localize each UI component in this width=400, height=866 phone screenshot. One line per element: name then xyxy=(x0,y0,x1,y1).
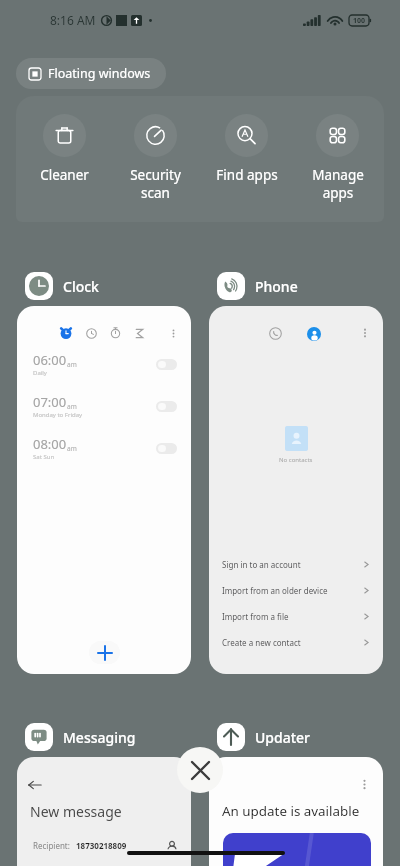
staticText: 08:00 xyxy=(33,435,67,453)
button[interactable]: Security scan xyxy=(110,114,201,202)
staticText: am xyxy=(67,444,77,453)
staticText: Security scan xyxy=(130,166,181,202)
staticText: 07:00 xyxy=(33,393,67,411)
button[interactable]: 06:00 xyxy=(17,348,191,380)
button[interactable]: Back xyxy=(28,778,42,792)
button[interactable]: Messaging xyxy=(25,723,136,751)
staticText: Floating windows xyxy=(48,65,151,82)
button[interactable]: Floating windows xyxy=(16,58,166,89)
button[interactable]: Clock xyxy=(25,272,99,300)
button[interactable]: Find apps xyxy=(201,114,292,184)
button[interactable]: Recents xyxy=(269,327,282,340)
staticText: 100 xyxy=(353,16,366,26)
button[interactable]: Alarm xyxy=(17,306,191,674)
button[interactable]: More options xyxy=(359,327,371,339)
staticText: 8:16 AM xyxy=(50,12,96,28)
button[interactable]: Sign in to an account xyxy=(209,551,383,577)
button[interactable]: More options xyxy=(209,757,383,866)
staticText: Find apps xyxy=(216,166,278,184)
button[interactable]: More options xyxy=(358,778,371,791)
staticText: am xyxy=(67,402,77,411)
staticText: Cleaner xyxy=(40,166,89,184)
button[interactable]: Import from a file xyxy=(209,603,383,629)
staticText: Clock xyxy=(63,277,99,296)
button[interactable]: Stopwatch xyxy=(110,327,121,338)
staticText: Import from a file xyxy=(222,611,289,622)
button[interactable]: Phone xyxy=(217,272,298,300)
staticText: Sign in to an account xyxy=(222,559,301,570)
button[interactable]: Back xyxy=(17,757,191,866)
button[interactable]: Create a new contact xyxy=(209,629,383,655)
button[interactable]: Cleaner xyxy=(19,114,110,184)
staticText: Updater xyxy=(255,728,311,747)
staticText: am xyxy=(67,360,77,369)
staticText: Create a new contact xyxy=(222,637,301,648)
button[interactable]: Close all xyxy=(177,747,223,793)
staticText: 06:00 xyxy=(33,351,67,369)
button[interactable]: Alarm xyxy=(60,327,72,339)
staticText: Import from an older device xyxy=(222,585,328,596)
staticText: Manage apps xyxy=(312,166,364,202)
staticText: Sat Sun xyxy=(33,453,55,461)
button[interactable]: Recents xyxy=(209,306,383,674)
staticText: Messaging xyxy=(63,728,136,747)
button[interactable]: 07:00 xyxy=(17,390,191,422)
button[interactable]: Contacts xyxy=(307,327,321,341)
button[interactable]: More options xyxy=(168,328,179,339)
staticText: Phone xyxy=(255,277,298,296)
staticText: No contacts xyxy=(279,456,313,464)
button[interactable]: Import from an older device xyxy=(209,577,383,603)
button[interactable]: Clock xyxy=(86,328,97,339)
staticText: Recipient: xyxy=(33,840,70,851)
button[interactable]: Manage apps xyxy=(292,114,383,202)
button[interactable]: Add alarm xyxy=(89,641,120,664)
staticText: 18730218809 xyxy=(76,840,127,851)
button[interactable]: Updater xyxy=(217,723,311,751)
staticText: An update is available xyxy=(222,802,360,820)
button[interactable]: Timer xyxy=(134,328,145,339)
staticText: Monday to Friday xyxy=(33,411,83,419)
button[interactable]: 08:00 xyxy=(17,432,191,464)
staticText: Daily xyxy=(33,369,47,377)
staticText: New message xyxy=(30,802,122,821)
